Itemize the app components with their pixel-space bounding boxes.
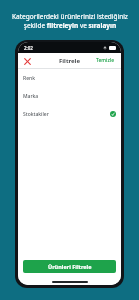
button[interactable]: Kapat bbox=[21, 55, 33, 67]
button[interactable]: Temizle bbox=[94, 55, 117, 66]
button[interactable]: Renk bbox=[18, 69, 121, 87]
staticText: Filtrele bbox=[59, 57, 80, 65]
button[interactable]: Ürünleri Filtrele bbox=[23, 260, 116, 273]
staticText: 2:02 bbox=[24, 45, 33, 51]
staticText: Renk bbox=[23, 75, 35, 82]
button[interactable]: Stoktakiler bbox=[18, 105, 121, 123]
staticText: Marka bbox=[23, 93, 39, 100]
staticText: Kategorilerdeki ürünlerinizi istediğiniz… bbox=[12, 12, 128, 30]
staticText: Stoktakiler bbox=[23, 111, 49, 118]
staticText: Temizle bbox=[96, 57, 115, 64]
button[interactable]: Marka bbox=[18, 87, 121, 105]
staticText: Ürünleri Filtrele bbox=[48, 263, 92, 270]
